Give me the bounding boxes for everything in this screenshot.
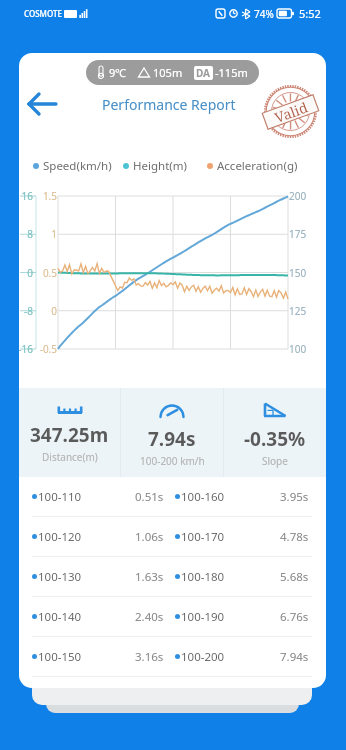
staticText: -8 <box>19 304 33 318</box>
staticText: 4.78s <box>280 529 309 545</box>
button[interactable]: 100-190 <box>172 597 326 636</box>
staticText: 125 <box>289 304 307 318</box>
staticText: 100-180 <box>181 569 225 585</box>
button[interactable]: 100-150 <box>19 637 172 676</box>
button[interactable]: 347.25m <box>19 388 120 477</box>
staticText: 347.25m <box>30 422 109 448</box>
button[interactable]: 100-180 <box>172 557 326 596</box>
staticText: 16 <box>19 189 33 203</box>
staticText: Distance(m) <box>42 450 98 464</box>
staticText: 175 <box>289 227 307 241</box>
staticText: -115m <box>215 65 248 80</box>
button[interactable]: 100-130 <box>19 557 172 596</box>
staticText: 100-200 km/h <box>140 454 205 468</box>
staticText: 0.5 <box>37 266 57 280</box>
staticText: 1.63s <box>135 569 164 585</box>
staticText: 100 <box>289 342 307 356</box>
staticText: 100-140 <box>38 609 82 625</box>
staticText: 200 <box>289 189 307 203</box>
staticText: 2.40s <box>135 609 164 625</box>
staticText: 8 <box>19 227 33 241</box>
staticText: Height(m) <box>133 158 187 174</box>
button[interactable]: Speed(km/h) <box>33 158 112 174</box>
staticText: 105m <box>153 65 183 80</box>
staticText: -0.5 <box>37 342 57 356</box>
staticText: 5:52 <box>299 6 321 21</box>
staticText: 6.76s <box>280 609 309 625</box>
staticText: 9℃ <box>109 65 127 80</box>
staticText: Slope <box>262 454 288 468</box>
staticText: 1.06s <box>135 529 164 545</box>
button[interactable]: Acceleration(g) <box>207 158 298 174</box>
button[interactable]: 100-170 <box>172 517 326 556</box>
staticText: 100-150 <box>38 649 82 665</box>
staticText: -0.35% <box>244 426 306 452</box>
button[interactable]: 100-160 <box>172 477 326 516</box>
button[interactable]: 100-140 <box>19 597 172 636</box>
staticText: COSMOTE <box>24 8 62 19</box>
staticText: 7.94s <box>280 649 309 665</box>
staticText: 3.95s <box>280 489 309 505</box>
button[interactable]: 100-120 <box>19 517 172 556</box>
staticText: 100-120 <box>38 529 82 545</box>
staticText: 100-110 <box>38 489 82 505</box>
staticText: Valid <box>272 98 310 126</box>
staticText: Speed(km/h) <box>43 158 112 174</box>
button[interactable]: 7.94s <box>121 388 223 477</box>
staticText: 150 <box>289 266 307 280</box>
button[interactable]: 9℃ <box>97 60 248 85</box>
staticText: 3.16s <box>135 649 164 665</box>
staticText: 1 <box>37 227 57 241</box>
staticText: 100-130 <box>38 569 82 585</box>
staticText: 0 <box>37 304 57 318</box>
staticText: 74% <box>254 7 274 21</box>
staticText: Acceleration(g) <box>217 158 298 174</box>
staticText: 0.51s <box>135 489 164 505</box>
staticText: 5.68s <box>280 569 309 585</box>
button[interactable]: -0.35% <box>224 388 326 477</box>
staticText: 100-160 <box>181 489 225 505</box>
staticText: 100-170 <box>181 529 225 545</box>
staticText: 1.5 <box>37 189 57 203</box>
staticText: Performance Report <box>102 95 236 114</box>
staticText: -16 <box>19 342 33 356</box>
staticText: 7.94s <box>148 426 196 452</box>
button[interactable]: Height(m) <box>123 158 187 174</box>
staticText: 100-200 <box>181 649 225 665</box>
staticText: 100-190 <box>181 609 225 625</box>
button[interactable]: 100-110 <box>19 477 172 516</box>
staticText: DA <box>196 66 211 80</box>
button[interactable]: Back <box>24 91 60 117</box>
button[interactable]: 100-200 <box>172 637 326 676</box>
staticText: 0 <box>19 266 33 280</box>
